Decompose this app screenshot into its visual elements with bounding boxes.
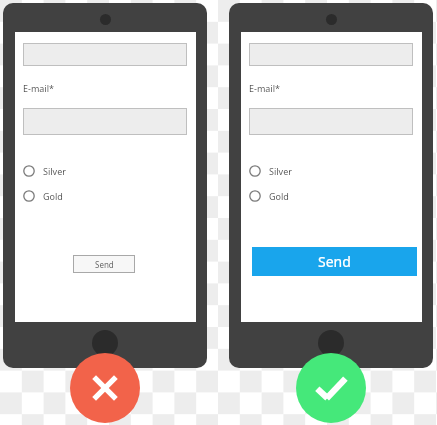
staticText: Gold xyxy=(269,190,289,202)
button[interactable] xyxy=(23,43,187,66)
button[interactable] xyxy=(249,43,413,66)
button[interactable]: Gold xyxy=(249,186,329,206)
staticText: Silver xyxy=(269,165,292,177)
staticText: E-mail* xyxy=(23,82,54,94)
button[interactable]: Incorrect xyxy=(70,353,140,423)
button[interactable]: Silver xyxy=(249,161,329,181)
staticText: Gold xyxy=(43,190,63,202)
staticText: Silver xyxy=(43,165,66,177)
button[interactable]: Send xyxy=(73,255,135,273)
button[interactable]: Send xyxy=(252,247,417,276)
staticText: Send xyxy=(95,259,114,270)
button[interactable]: Correct xyxy=(296,353,366,423)
staticText: E-mail* xyxy=(249,82,280,94)
button[interactable] xyxy=(249,108,413,135)
button[interactable]: Gold xyxy=(23,186,103,206)
staticText: Send xyxy=(318,252,351,271)
button[interactable]: Silver xyxy=(23,161,103,181)
button[interactable] xyxy=(23,108,187,135)
